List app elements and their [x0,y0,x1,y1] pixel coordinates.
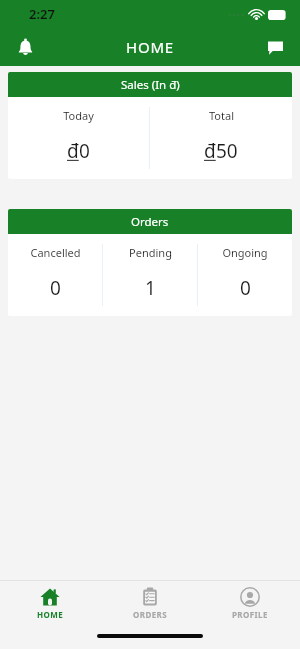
staticText: 0 [79,138,90,164]
staticText: Pending [129,245,172,260]
staticText: 2:27 [29,5,55,23]
staticText: Total [209,108,234,123]
staticText: Cancelled [30,245,81,260]
staticText: HOME [126,37,174,57]
button[interactable]: Today [8,97,149,179]
button[interactable]: HOME [0,581,100,626]
staticText: PROFILE [232,609,268,620]
button[interactable]: ORDERS [100,581,200,626]
staticText: Orders [131,214,169,230]
button[interactable]: Messages [258,30,292,64]
staticText: 50 [216,138,238,164]
staticText: Ongoing [222,245,268,260]
staticText: 0 [240,275,251,301]
staticText: Sales (In đ) [121,77,180,93]
staticText: ORDERS [133,609,167,620]
button[interactable]: Ongoing [198,234,292,316]
button[interactable]: Pending [103,234,197,316]
button[interactable]: Notifications [8,30,42,64]
button[interactable]: Total [150,97,292,179]
button[interactable]: Cancelled [8,234,102,316]
staticText: Today [63,108,94,123]
staticText: đ [204,138,216,164]
staticText: 1 [145,275,156,301]
staticText: 0 [50,275,61,301]
staticText: đ [67,138,79,164]
staticText: HOME [37,609,64,620]
button[interactable]: PROFILE [200,581,300,626]
